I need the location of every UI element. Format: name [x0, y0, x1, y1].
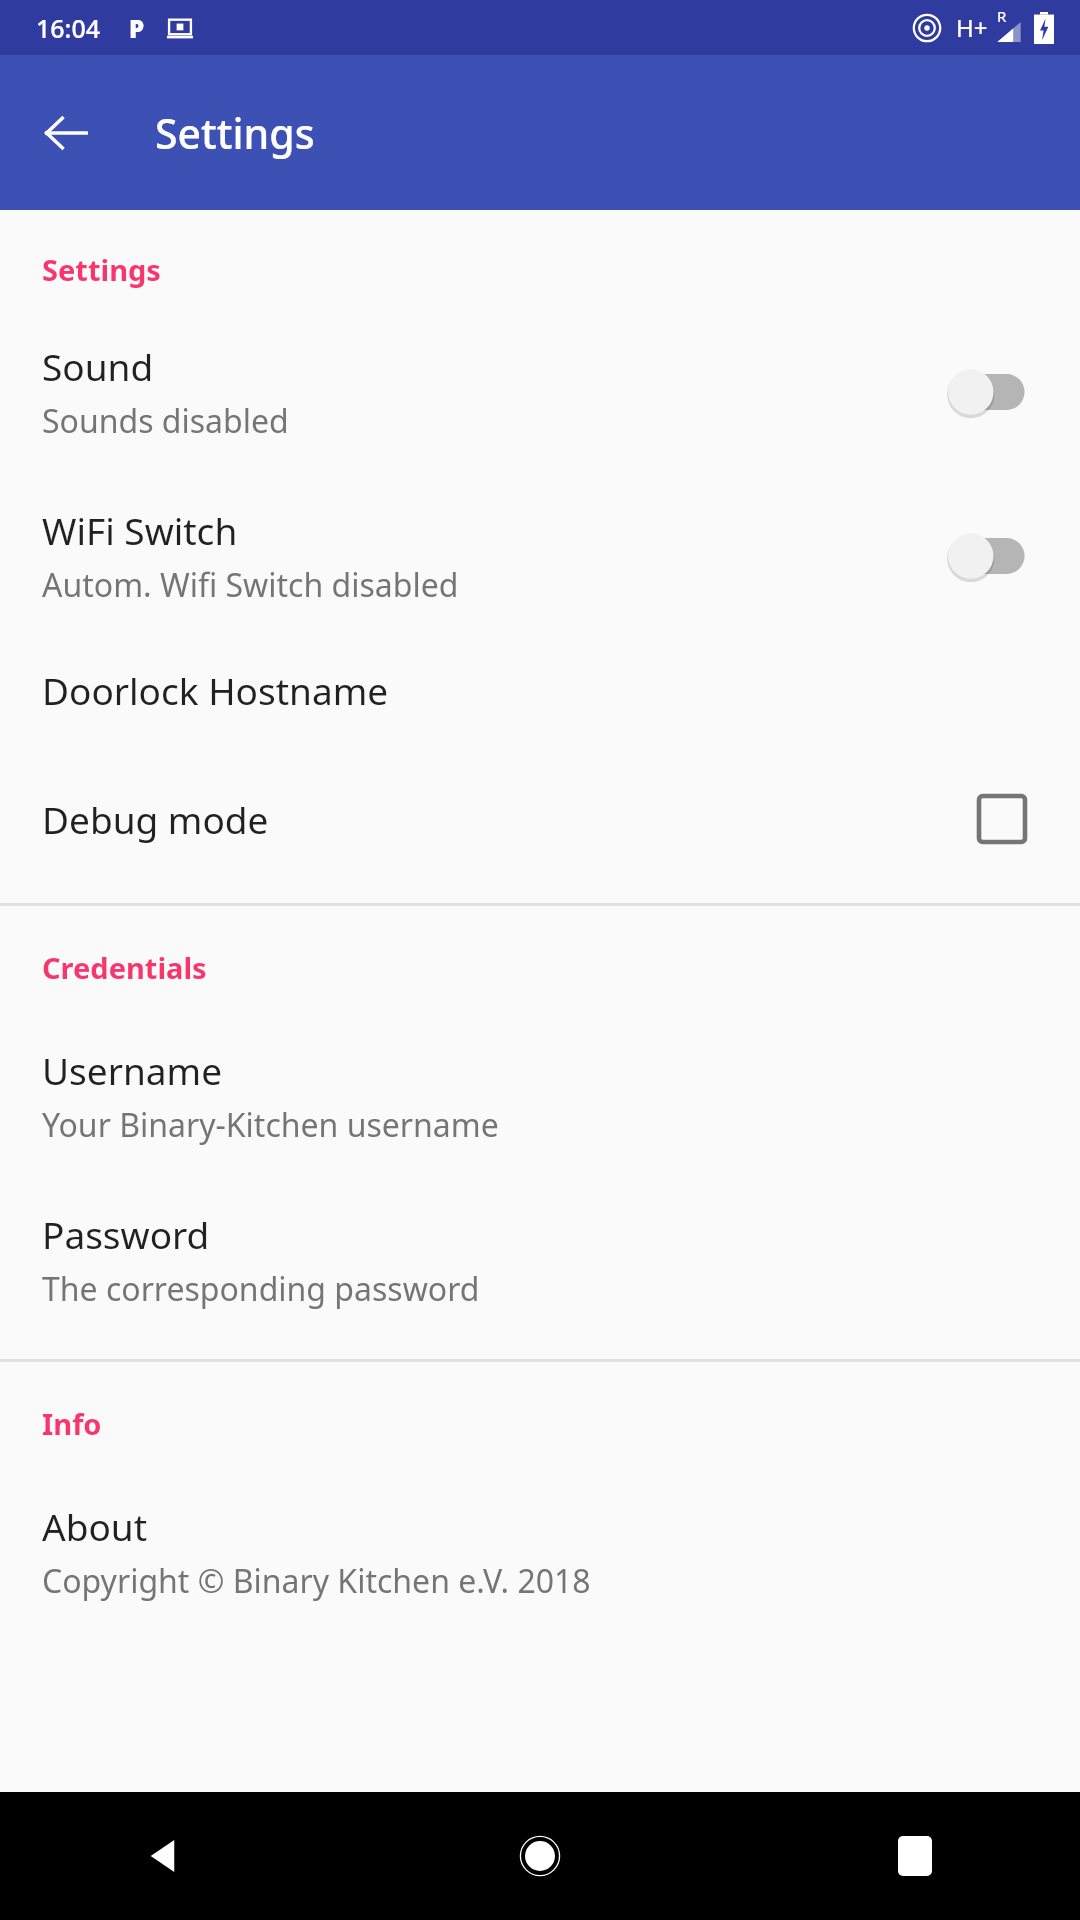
button[interactable]: Back: [20, 87, 112, 179]
staticText: Copyright © Binary Kitchen e.V. 2018: [42, 1559, 591, 1603]
staticText: P: [129, 12, 145, 45]
button[interactable]: Doorlock Hostname: [0, 665, 1080, 715]
staticText: Sound: [42, 341, 154, 391]
staticText: WiFi Switch: [42, 505, 238, 555]
button[interactable]: About: [0, 1501, 1080, 1603]
button[interactable]: WiFi Switch: [0, 505, 1080, 607]
staticText: Autom. Wifi Switch disabled: [42, 563, 459, 607]
staticText: Username: [42, 1045, 223, 1095]
staticText: About: [42, 1501, 148, 1551]
button[interactable]: Debug mode: [0, 783, 1080, 855]
staticText: Password: [42, 1209, 210, 1259]
staticText: R: [997, 6, 1007, 26]
staticText: Doorlock Hostname: [42, 665, 389, 715]
staticText: H+: [956, 11, 988, 44]
button[interactable]: Recent apps: [870, 1811, 960, 1901]
staticText: Debug mode: [42, 794, 269, 844]
staticText: Credentials: [42, 948, 207, 987]
staticText: Settings: [42, 250, 161, 289]
staticText: Info: [42, 1404, 102, 1443]
staticText: Settings: [155, 105, 315, 161]
staticText: The corresponding password: [42, 1267, 480, 1311]
button[interactable]: Username: [0, 1045, 1080, 1147]
button[interactable]: Sound: [0, 341, 1080, 443]
button[interactable]: Toggle: [942, 360, 1038, 424]
button[interactable]: Debug mode checkbox: [966, 783, 1038, 855]
button[interactable]: Back: [120, 1811, 210, 1901]
button[interactable]: Toggle: [942, 524, 1038, 588]
staticText: 16:04: [36, 11, 101, 45]
button[interactable]: Home: [495, 1811, 585, 1901]
staticText: Sounds disabled: [42, 399, 289, 443]
staticText: Your Binary-Kitchen username: [42, 1103, 499, 1147]
button[interactable]: Password: [0, 1209, 1080, 1311]
